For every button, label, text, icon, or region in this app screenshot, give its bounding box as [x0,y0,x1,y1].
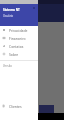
button[interactable]: Financeiro [0,34,38,42]
button[interactable]: Contatos [0,42,38,50]
staticText: Sobre [9,52,19,57]
button[interactable]: Privacidade [0,26,38,34]
staticText: Privacidade [9,28,28,33]
button[interactable]: Sobre [0,50,38,58]
staticText: Versão [3,64,12,68]
staticText: Contatos [9,44,24,49]
staticText: Financeiro [9,36,26,41]
staticText: Usuário [3,14,14,18]
staticText: Sistema NT [3,8,20,12]
button[interactable]: Clientes [0,102,38,110]
staticText: Clientes [9,104,22,109]
